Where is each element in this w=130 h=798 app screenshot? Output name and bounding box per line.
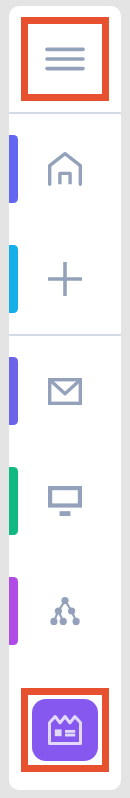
button[interactable]: Add <box>9 224 121 334</box>
button[interactable]: Hierarchy <box>9 556 121 666</box>
button[interactable]: Mail <box>9 336 121 446</box>
button[interactable]: Home <box>9 114 121 224</box>
button[interactable]: Display <box>9 446 121 556</box>
button[interactable]: Menu <box>28 24 102 94</box>
button[interactable]: Store <box>32 699 98 761</box>
